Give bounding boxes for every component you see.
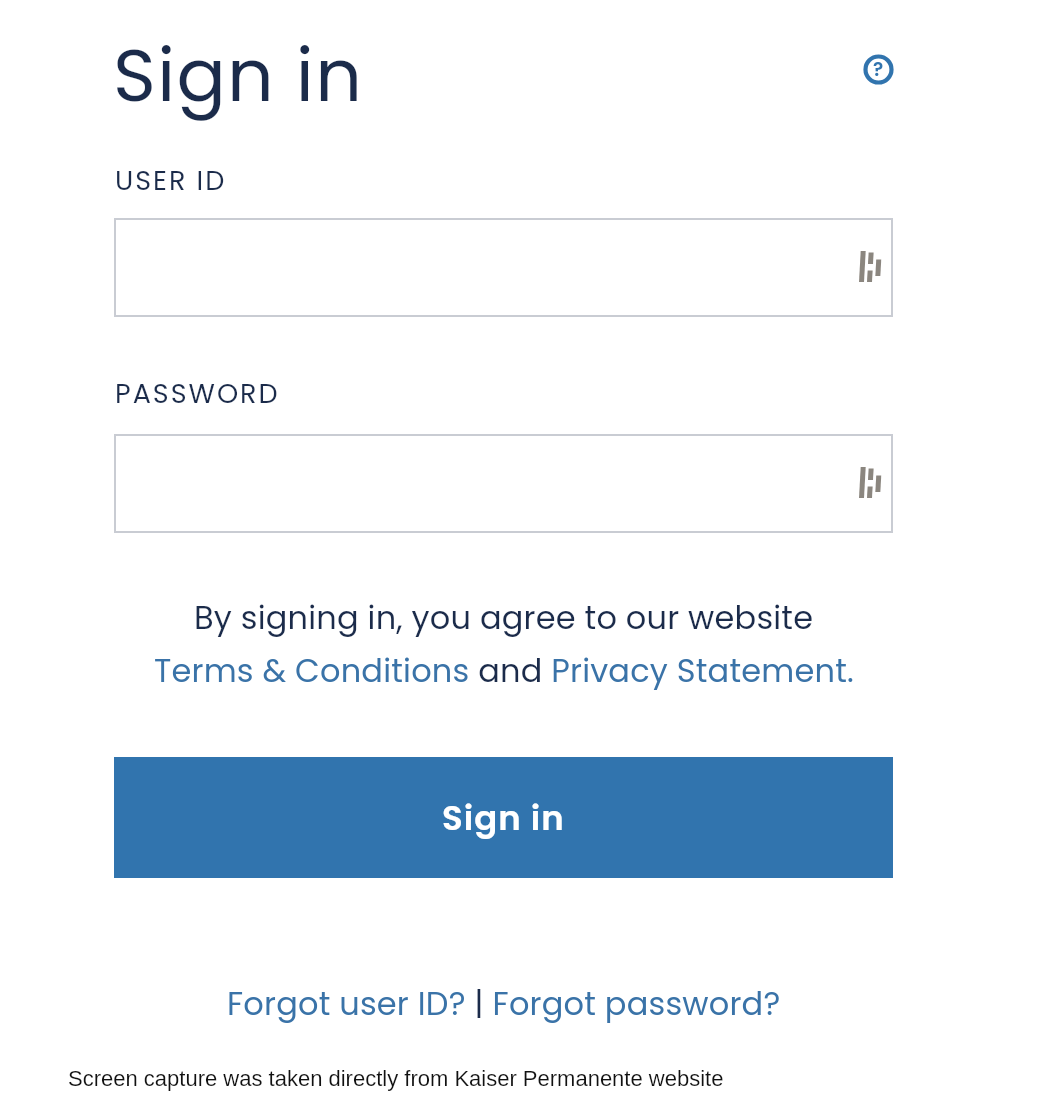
button[interactable]: Forgot user ID? | Forgot password? [114,981,893,1026]
staticText: ? [873,56,884,83]
staticText: PASSWORD [115,375,280,413]
button[interactable]: Sign in [114,757,893,878]
staticText: Sign in [113,24,364,126]
staticText: Sign in [442,794,565,842]
staticText: Forgot user ID? | Forgot password? [227,981,781,1026]
staticText: By signing in, you agree to our website [194,595,814,640]
staticText: Terms & Conditions and Privacy Statement… [154,648,854,693]
button[interactable] [114,218,893,317]
staticText: USER ID [115,162,227,200]
staticText: Screen capture was taken directly from K… [68,1066,724,1091]
button[interactable]: ? [860,51,897,88]
button[interactable] [114,434,893,533]
